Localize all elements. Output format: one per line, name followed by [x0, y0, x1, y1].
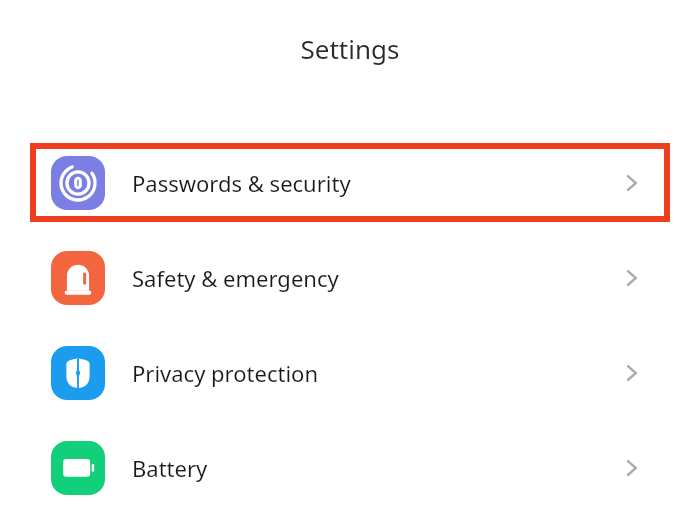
staticText: Privacy protection — [132, 358, 319, 388]
staticText: Battery — [132, 453, 208, 483]
staticText: Settings — [0, 31, 700, 66]
button[interactable]: Battery — [36, 434, 664, 501]
staticText: Passwords & security — [132, 168, 351, 198]
button[interactable]: Passwords & security — [36, 149, 664, 216]
button[interactable]: Safety & emergency — [36, 244, 664, 311]
button[interactable]: Privacy protection — [36, 339, 664, 406]
staticText: Safety & emergency — [132, 263, 339, 293]
